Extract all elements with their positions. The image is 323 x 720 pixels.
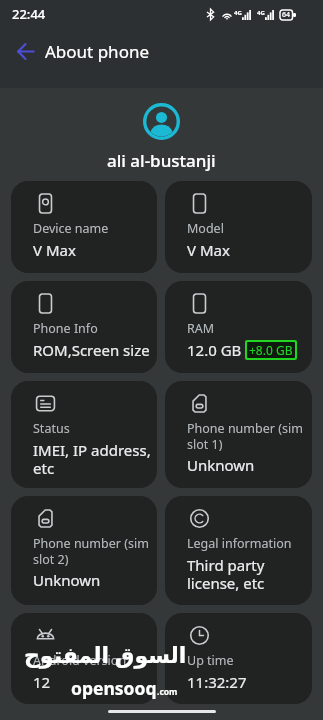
button[interactable]: Back (9, 35, 41, 67)
staticText: Up time (187, 652, 234, 669)
staticText: RAM (187, 320, 215, 337)
staticText: 22:44 (12, 5, 46, 23)
staticText: Unknown (33, 570, 101, 590)
staticText: 12.0 GB (187, 340, 242, 360)
staticText: +8.0 GB (249, 342, 293, 358)
staticText: V Max (187, 240, 230, 260)
staticText: Legal information (187, 535, 292, 552)
button[interactable]: Status (11, 381, 157, 488)
staticText: .com (157, 686, 178, 698)
staticText: 64 (282, 10, 291, 20)
staticText: Device name (33, 220, 109, 237)
staticText: 12 (33, 672, 51, 692)
staticText: 11:32:27 (187, 672, 247, 692)
button[interactable]: Legal information (165, 496, 312, 605)
staticText: Model (187, 220, 224, 237)
staticText: Unknown (187, 455, 255, 475)
button[interactable]: RAM (165, 281, 312, 373)
staticText: Third party license, etc (187, 555, 265, 594)
staticText: Phone number (sim slot 2) (33, 535, 149, 567)
button[interactable]: Android version (11, 613, 157, 704)
staticText: 4G (234, 9, 242, 17)
staticText: ali al-bustanji (107, 149, 216, 172)
staticText: About phone (45, 40, 150, 63)
button[interactable]: Device name (11, 181, 157, 273)
staticText: Status (33, 420, 70, 437)
button[interactable]: Up time (165, 613, 312, 704)
button[interactable]: Model (165, 181, 312, 273)
button[interactable]: Phone Info (11, 281, 157, 373)
staticText: IMEI, IP address, etc (33, 440, 151, 479)
staticText: ROM,Screen size (33, 340, 150, 360)
button[interactable]: Phone number (sim slot 2) (11, 496, 157, 605)
staticText: V Max (33, 240, 76, 260)
staticText: السوق المفتوح (24, 639, 187, 669)
staticText: 4G (257, 9, 265, 17)
button[interactable]: Phone number (sim slot 1) (165, 381, 312, 488)
staticText: Phone Info (33, 320, 98, 337)
staticText: opensooq (71, 676, 157, 700)
staticText: Phone number (sim slot 1) (187, 420, 303, 452)
staticText: Android version (33, 652, 127, 669)
